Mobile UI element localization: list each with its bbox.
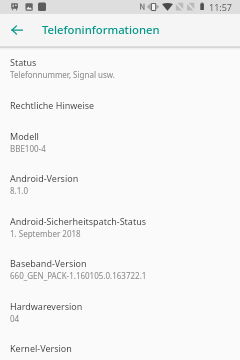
staticText: Rechtliche Hinweise	[10, 99, 95, 111]
staticText: Android-Version	[10, 172, 79, 184]
staticText: 8.1.0	[10, 185, 29, 196]
button[interactable]: Rechtliche Hinweise	[0, 97, 240, 128]
button[interactable]: Kernel-Version	[0, 340, 240, 360]
staticText: Modell	[10, 130, 39, 142]
button[interactable]: Status	[0, 54, 240, 96]
button[interactable]: Zurück	[6, 19, 28, 41]
staticText: Android-Sicherheitspatch-Status	[10, 215, 147, 227]
staticText: BBE100-4	[10, 143, 46, 154]
staticText: 11:57	[209, 1, 233, 13]
button[interactable]: Modell	[0, 128, 240, 170]
staticText: Kernel-Version	[10, 342, 72, 354]
staticText: 04	[10, 313, 20, 324]
staticText: Telefonnummer, Signal usw.	[10, 69, 115, 80]
button[interactable]: Android-Version	[0, 170, 240, 212]
button[interactable]: Hardwareversion	[0, 298, 240, 340]
staticText: Baseband-Version	[10, 257, 87, 269]
staticText: Status	[10, 56, 37, 68]
staticText: 660_GEN_PACK-1.160105.0.163722.1	[10, 270, 147, 281]
button[interactable]: Baseband-Version	[0, 255, 240, 297]
button[interactable]: Android-Sicherheitspatch-Status	[0, 213, 240, 255]
staticText: Telefoninformationen	[42, 22, 160, 37]
staticText: 1. September 2018	[10, 228, 81, 239]
staticText: Hardwareversion	[10, 300, 83, 312]
